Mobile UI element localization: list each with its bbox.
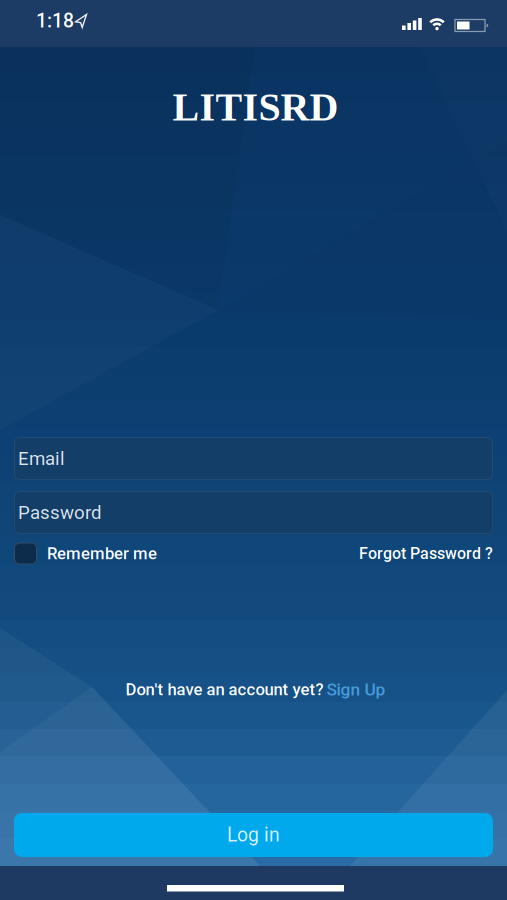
staticText: Email <box>18 448 65 469</box>
staticText: Log in <box>227 824 280 846</box>
staticText: 1:18 <box>36 10 74 32</box>
staticText: Sign Up <box>326 679 385 700</box>
button[interactable]: Log in <box>14 813 493 857</box>
staticText: LITISRD <box>172 85 338 129</box>
staticText: Forgot Password ? <box>359 544 493 563</box>
staticText: Password <box>18 502 102 523</box>
button[interactable]: Email <box>14 437 493 480</box>
button[interactable]: Password <box>14 491 493 534</box>
button[interactable]: Sign Up <box>326 679 385 700</box>
button[interactable]: Forgot Password ? <box>359 544 493 563</box>
staticText: Remember me <box>47 544 157 563</box>
staticText: Don't have an account yet? <box>125 680 323 699</box>
button[interactable]: Remember me <box>14 542 37 564</box>
